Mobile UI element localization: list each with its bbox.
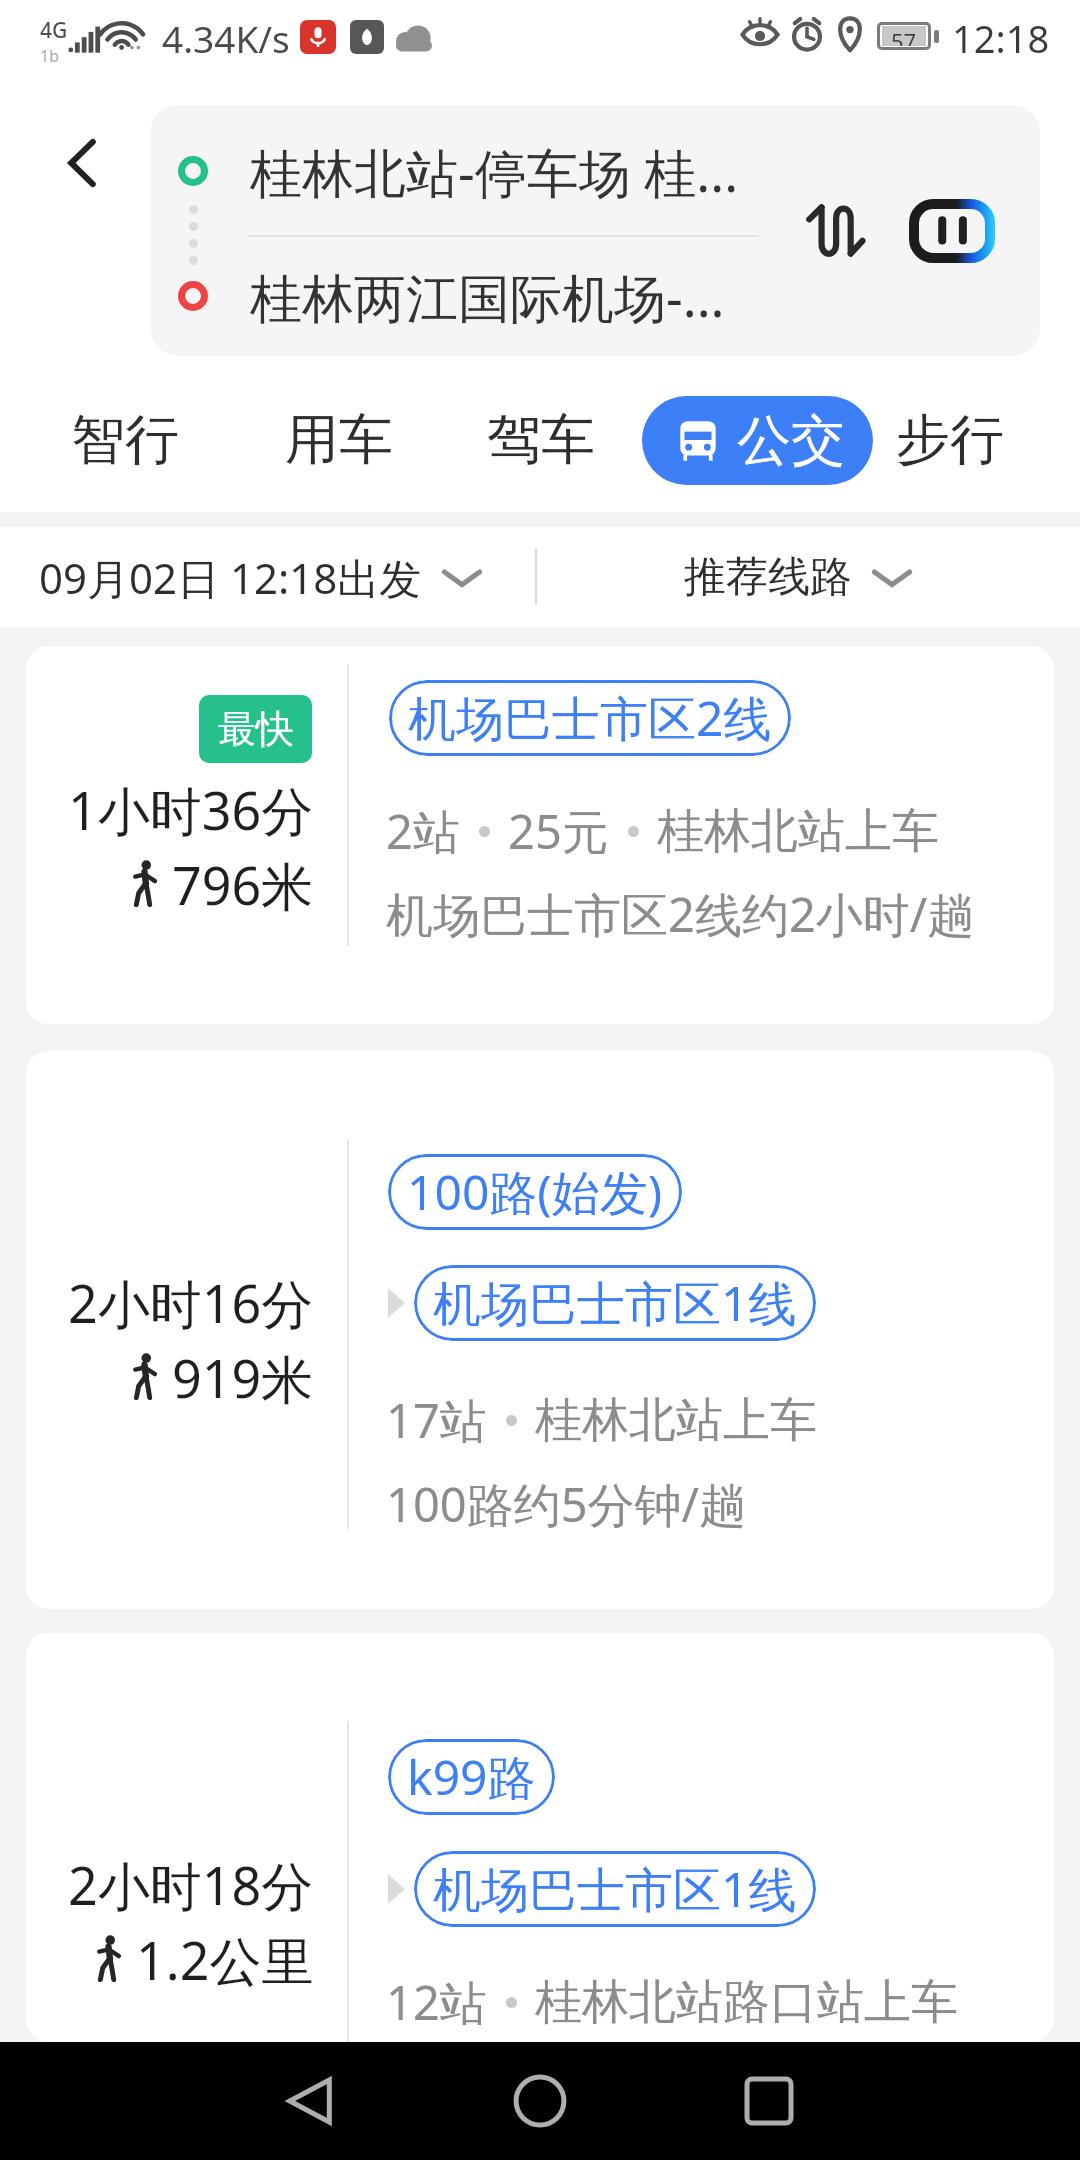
- staticText: 桂林北站-停车场 桂...: [250, 136, 739, 206]
- staticText: 桂林北站上车: [657, 802, 939, 861]
- staticText: 桂林北站上车: [535, 1391, 817, 1450]
- staticText: 驾车: [487, 406, 595, 474]
- staticText: 桂林北站路口站上车: [535, 1973, 958, 2032]
- button[interactable]: Recent apps: [714, 2046, 824, 2156]
- button[interactable]: 2小时18分: [26, 1633, 1054, 2042]
- button[interactable]: 100路(始发): [388, 1154, 682, 1230]
- button[interactable]: 步行: [890, 390, 1010, 490]
- staticText: 步行: [896, 406, 1004, 474]
- staticText: 12:18: [952, 12, 1050, 64]
- staticText: 机场巴士市区2线约2小时/趟: [386, 882, 975, 946]
- staticText: 57: [891, 26, 917, 46]
- staticText: 25元: [508, 799, 609, 863]
- staticText: 2站: [386, 799, 460, 863]
- staticText: 100路(始发): [407, 1159, 663, 1225]
- button[interactable]: 机场巴士市区2线: [389, 680, 791, 756]
- staticText: 推荐线路: [684, 551, 852, 604]
- staticText: 2小时16分: [68, 1267, 314, 1335]
- button[interactable]: Voice assistant: [892, 181, 1012, 281]
- staticText: 4.34K/s: [162, 13, 290, 63]
- staticText: 1小时36分: [68, 774, 314, 842]
- staticText: 4G: [40, 16, 68, 45]
- staticText: 17站: [386, 1388, 487, 1452]
- staticText: 1b: [40, 45, 59, 67]
- staticText: 机场巴士市区1线: [433, 1270, 797, 1336]
- button[interactable]: 驾车: [481, 390, 601, 490]
- staticText: 2小时18分: [68, 1849, 314, 1917]
- button[interactable]: Back: [255, 2046, 365, 2156]
- button[interactable]: 桂林北站-停车场 桂...: [150, 105, 1040, 356]
- staticText: 100路约5分钟/趟: [386, 1472, 747, 1536]
- button[interactable]: 智行: [65, 390, 185, 490]
- staticText: 用车: [285, 406, 393, 474]
- button[interactable]: 机场巴士市区1线: [414, 1851, 816, 1927]
- button[interactable]: Home: [485, 2046, 595, 2156]
- staticText: 桂林两江国际机场-...: [250, 261, 725, 331]
- staticText: 智行: [71, 406, 179, 474]
- button[interactable]: k99路: [388, 1739, 555, 1815]
- staticText: 919米: [172, 1342, 314, 1410]
- staticText: k99路: [407, 1744, 536, 1810]
- staticText: 09月02日 12:18出发: [39, 549, 422, 606]
- staticText: 最快: [218, 705, 294, 753]
- staticText: 796米: [172, 849, 314, 917]
- staticText: 机场巴士市区2线: [408, 685, 772, 751]
- button[interactable]: 推荐线路: [684, 539, 914, 616]
- staticText: 机场巴士市区1线: [433, 1856, 797, 1922]
- button[interactable]: 公交: [642, 396, 873, 485]
- staticText: 12站: [386, 1970, 487, 2034]
- button[interactable]: Swap start and destination: [787, 183, 883, 279]
- button[interactable]: 2小时16分: [26, 1051, 1054, 1609]
- button[interactable]: 用车: [279, 390, 399, 490]
- button[interactable]: 最快: [26, 646, 1054, 1024]
- button[interactable]: 09月02日 12:18出发: [39, 537, 484, 618]
- button[interactable]: 机场巴士市区1线: [414, 1265, 816, 1341]
- staticText: 1.2公里: [136, 1924, 314, 1992]
- staticText: 公交: [737, 407, 845, 475]
- button[interactable]: Back: [42, 123, 122, 203]
